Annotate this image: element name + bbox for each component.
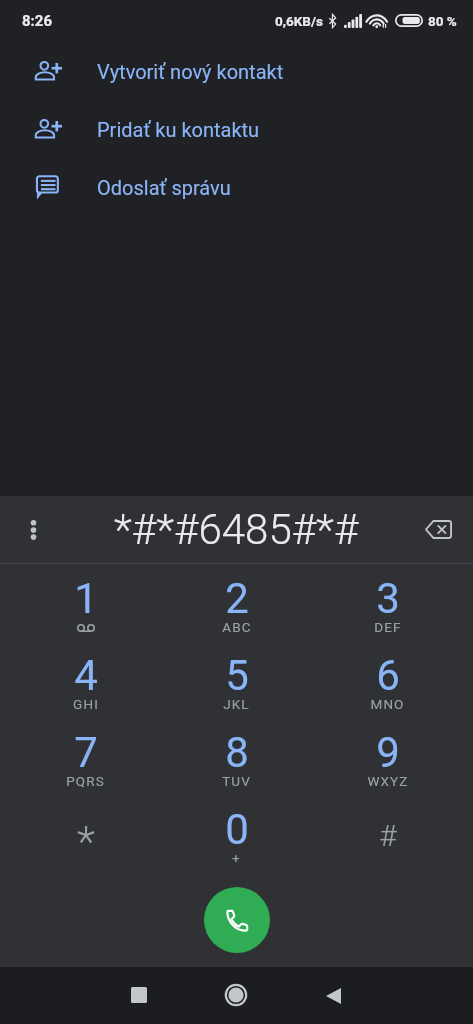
button[interactable]: 0 [161, 795, 312, 872]
staticText: MNO [370, 696, 405, 712]
staticText: 0,6KB/s [275, 13, 323, 29]
staticText: 8 [225, 728, 249, 777]
staticText: 1 [74, 574, 98, 623]
staticText: + [232, 850, 241, 866]
button[interactable]: Backspace [406, 496, 473, 563]
staticText: 9 [376, 728, 400, 777]
button[interactable]: Back [305, 968, 361, 1024]
staticText: 7 [74, 728, 98, 777]
button[interactable]: Recent apps [111, 967, 167, 1023]
staticText: 6 [376, 651, 400, 700]
button[interactable]: 4 [10, 641, 161, 718]
staticText: DEF [374, 619, 402, 635]
button[interactable]: Odoslať správu [0, 158, 473, 216]
staticText: 80 % [428, 13, 457, 29]
staticText: Pridať ku kontaktu [97, 118, 260, 141]
button[interactable]: 7 [10, 718, 161, 795]
staticText: TUV [222, 773, 251, 789]
button[interactable]: 8 [161, 718, 312, 795]
staticText: ABC [222, 619, 252, 635]
button[interactable]: 5 [161, 641, 312, 718]
button[interactable]: Vytvoriť nový kontakt [0, 42, 473, 100]
button[interactable]: # [312, 795, 463, 872]
button[interactable]: 2 [161, 564, 312, 641]
staticText: *#*#6485#*# [114, 505, 359, 554]
staticText: 5 [225, 651, 249, 700]
staticText: PQRS [66, 773, 105, 789]
button[interactable]: Call [204, 887, 270, 953]
button[interactable]: More options [0, 496, 67, 563]
staticText: WXYZ [367, 773, 409, 789]
staticText: 2 [225, 574, 249, 623]
staticText: 8:26 [22, 12, 53, 30]
button[interactable]: Pridať ku kontaktu [0, 100, 473, 158]
staticText: JKL [223, 696, 250, 712]
staticText: Odoslať správu [97, 176, 231, 199]
staticText: 4 [74, 651, 98, 700]
button[interactable]: 3 [312, 564, 463, 641]
staticText: 0 [225, 805, 249, 854]
staticText: * [77, 817, 95, 866]
button[interactable]: Home [208, 967, 264, 1023]
staticText: Vytvoriť nový kontakt [97, 60, 284, 83]
button[interactable]: 6 [312, 641, 463, 718]
button[interactable]: 9 [312, 718, 463, 795]
staticText: 3 [376, 574, 400, 623]
button[interactable]: * [10, 795, 161, 872]
button[interactable]: 1 [10, 564, 161, 641]
staticText: GHI [73, 696, 99, 712]
staticText: # [379, 818, 397, 853]
